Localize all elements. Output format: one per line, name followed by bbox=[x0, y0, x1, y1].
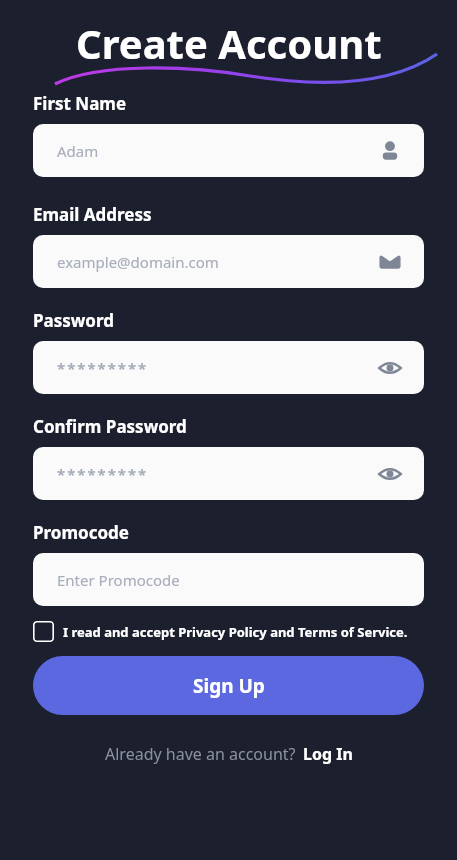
staticText: Create Account bbox=[76, 16, 382, 70]
staticText: ********* bbox=[57, 358, 149, 378]
button[interactable]: ********* bbox=[33, 447, 424, 500]
staticText: First Name bbox=[33, 92, 127, 115]
button[interactable]: Log In bbox=[303, 743, 353, 765]
button[interactable]: Enter Promocode bbox=[33, 553, 424, 606]
button[interactable]: Show password bbox=[376, 354, 404, 382]
staticText: Sign Up bbox=[193, 673, 265, 699]
button[interactable]: Sign Up bbox=[33, 656, 424, 715]
staticText: ********* bbox=[57, 464, 149, 484]
button[interactable]: Show password bbox=[376, 460, 404, 488]
button[interactable]: I read and accept Privacy Policy and Ter… bbox=[33, 621, 424, 642]
staticText: Adam bbox=[57, 141, 99, 161]
button[interactable]: example@domain.com bbox=[33, 235, 424, 288]
staticText: Password bbox=[33, 309, 114, 332]
staticText: I read and accept Privacy Policy and Ter… bbox=[63, 623, 408, 641]
button[interactable]: ********* bbox=[33, 341, 424, 394]
staticText: Enter Promocode bbox=[57, 570, 180, 590]
staticText: Confirm Password bbox=[33, 415, 187, 438]
staticText: Already have an account? bbox=[105, 743, 296, 765]
staticText: Log In bbox=[303, 743, 353, 765]
button[interactable]: User name bbox=[376, 137, 404, 165]
staticText: example@domain.com bbox=[57, 252, 219, 272]
staticText: Email Address bbox=[33, 203, 152, 226]
staticText: Promocode bbox=[33, 521, 129, 544]
button[interactable]: Email bbox=[376, 248, 404, 276]
button[interactable]: Adam bbox=[33, 124, 424, 177]
